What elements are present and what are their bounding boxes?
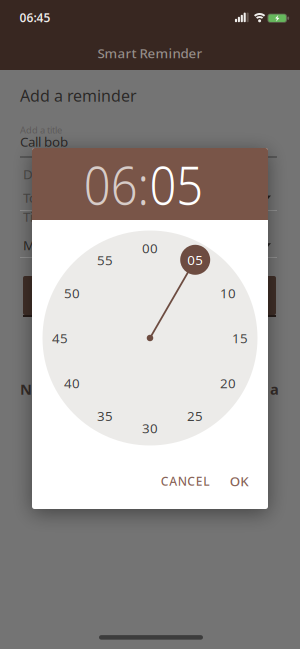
staticText: Morning (23, 236, 76, 254)
staticText: Notification will be shown (20, 379, 211, 399)
staticText: 10 (220, 284, 236, 302)
staticText: 30 (142, 419, 158, 437)
button[interactable]: CANCEL (155, 465, 215, 497)
staticText: 20 (220, 374, 236, 392)
staticText: Date (23, 165, 53, 183)
staticText: 05 (150, 147, 214, 221)
staticText: OK (230, 472, 248, 490)
staticText: Call bob (20, 133, 68, 150)
staticText: 06: (72, 147, 150, 221)
staticText: 35 (97, 407, 113, 425)
staticText: 25 (187, 407, 203, 425)
staticText: 45 (52, 329, 68, 347)
button[interactable] (23, 276, 276, 315)
staticText: Add a title (20, 124, 62, 136)
staticText: a (270, 379, 279, 399)
staticText: CANCEL (161, 473, 209, 489)
staticText: 15 (232, 329, 248, 347)
button[interactable]: Today (0, 189, 300, 206)
staticText: 06:45 (19, 9, 50, 25)
button[interactable]: Morning (0, 236, 300, 254)
staticText: 40 (64, 374, 80, 392)
button[interactable]: OK (224, 464, 254, 498)
staticText: Time (23, 208, 53, 225)
staticText: 05 (187, 251, 203, 269)
staticText: Add a reminder (20, 85, 137, 106)
staticText: 00 (142, 239, 158, 257)
staticText: Today (23, 189, 59, 206)
staticText: Smart Reminder (97, 44, 202, 62)
staticText: 50 (64, 284, 80, 302)
staticText: 55 (97, 251, 113, 269)
